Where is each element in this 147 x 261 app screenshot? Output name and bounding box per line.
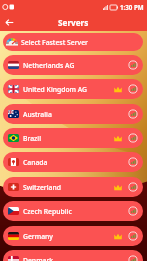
button[interactable]: United Kingdom AG [3, 79, 143, 99]
button[interactable]: Canada [3, 152, 143, 172]
staticText: Denmark [23, 256, 54, 261]
staticText: Australia [23, 110, 52, 119]
staticText: Brazil [23, 134, 41, 143]
button[interactable]: Australia [3, 104, 143, 124]
button[interactable]: Czech Republic [3, 201, 143, 221]
button[interactable]: Select Fastest Server [3, 33, 143, 51]
staticText: United Kingdom AG [23, 85, 88, 94]
button[interactable]: Back [2, 15, 17, 30]
button[interactable]: Switzerland [3, 177, 143, 197]
button[interactable]: Netherlands AG [3, 55, 143, 75]
staticText: Switzerland [23, 183, 61, 192]
staticText: Germany [23, 232, 53, 241]
staticText: Canada [23, 158, 48, 167]
button[interactable]: Germany [3, 226, 143, 246]
staticText: Netherlands AG [23, 61, 75, 70]
staticText: Czech Republic [23, 207, 72, 216]
button[interactable]: Brazil [3, 128, 143, 148]
staticText: Servers [58, 17, 89, 28]
staticText: 1:30 PM [120, 3, 144, 11]
staticText: Select Fastest Server [21, 38, 88, 47]
button[interactable]: Denmark [3, 250, 143, 261]
